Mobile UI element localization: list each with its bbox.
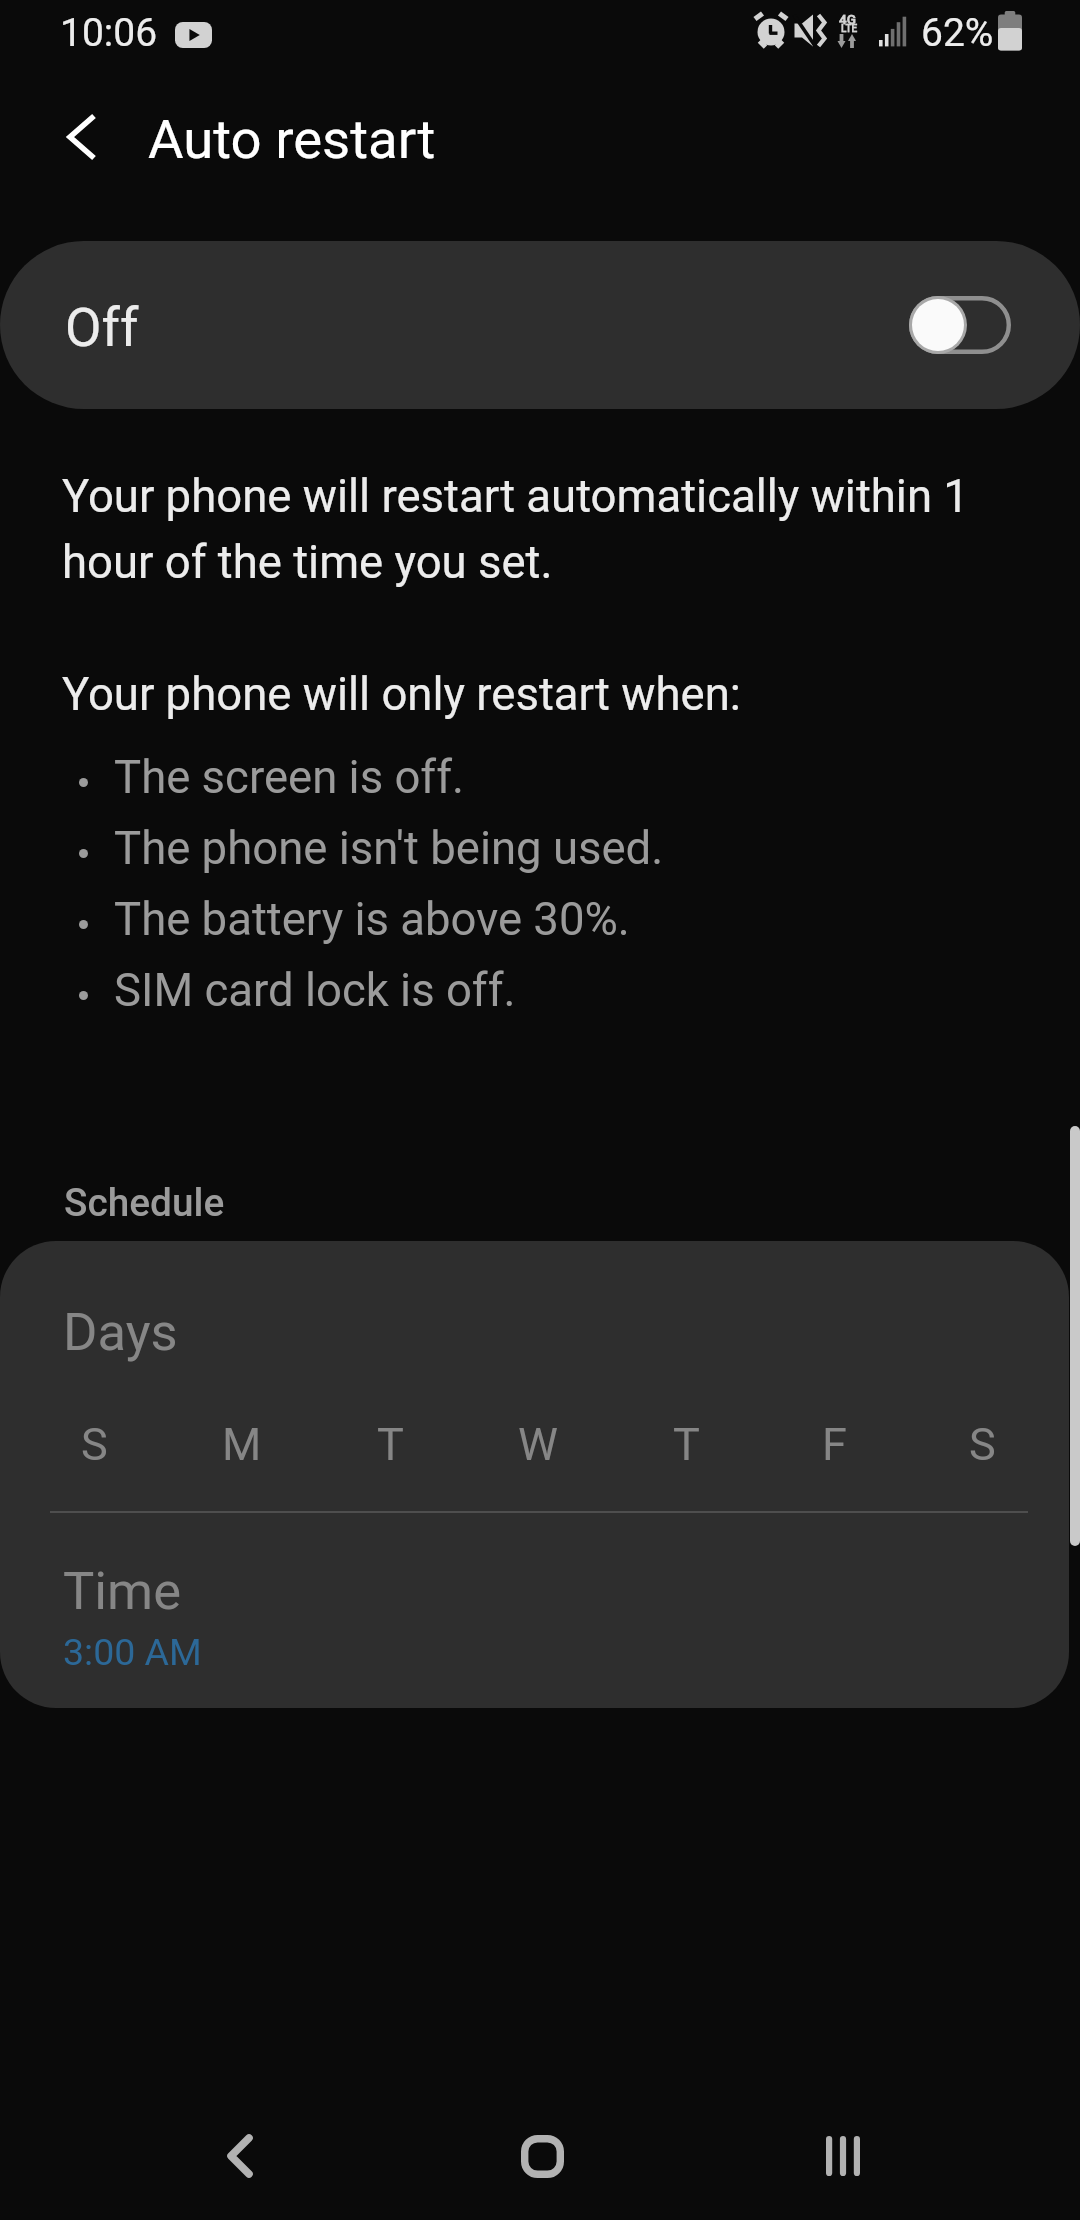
staticText: S bbox=[81, 1418, 108, 1471]
staticText: Auto restart bbox=[148, 107, 436, 171]
button[interactable]: Home bbox=[482, 2092, 602, 2220]
staticText: Days bbox=[63, 1301, 178, 1363]
button[interactable]: T bbox=[346, 1400, 434, 1488]
button[interactable]: Recent apps bbox=[783, 2092, 903, 2220]
staticText: The phone isn't being used. bbox=[114, 822, 664, 875]
staticText: T bbox=[377, 1418, 404, 1471]
button[interactable]: F bbox=[790, 1400, 878, 1488]
staticText: 10:06 bbox=[60, 10, 158, 56]
staticText: F bbox=[822, 1418, 847, 1471]
button[interactable]: M bbox=[198, 1400, 286, 1488]
staticText: 4G bbox=[839, 11, 856, 27]
button[interactable]: Navigate up bbox=[40, 95, 124, 179]
staticText: Off bbox=[65, 297, 139, 359]
button[interactable]: S bbox=[50, 1400, 138, 1488]
staticText: S bbox=[969, 1418, 996, 1471]
staticText: Your phone will only restart when: bbox=[62, 668, 741, 721]
staticText: W bbox=[518, 1418, 558, 1471]
staticText: T bbox=[673, 1418, 700, 1471]
staticText: The battery is above 30%. bbox=[114, 893, 630, 946]
staticText: Your phone will restart automatically wi… bbox=[62, 470, 1022, 589]
staticText: Time bbox=[63, 1560, 181, 1622]
button[interactable]: W bbox=[494, 1400, 582, 1488]
button[interactable]: S bbox=[938, 1400, 1026, 1488]
button[interactable]: T bbox=[642, 1400, 730, 1488]
staticText: Schedule bbox=[64, 1180, 225, 1225]
button[interactable]: Back bbox=[180, 2092, 300, 2220]
staticText: M bbox=[222, 1418, 262, 1471]
staticText: SIM card lock is off. bbox=[114, 964, 516, 1017]
button[interactable]: Auto restart off bbox=[893, 281, 1027, 369]
staticText: The screen is off. bbox=[114, 751, 465, 804]
staticText: 62% bbox=[921, 10, 994, 56]
button[interactable]: Time bbox=[0, 1531, 1069, 1708]
button[interactable]: Off bbox=[0, 241, 1080, 409]
staticText: LTE bbox=[841, 23, 858, 35]
staticText: 3:00 AM bbox=[63, 1630, 202, 1674]
